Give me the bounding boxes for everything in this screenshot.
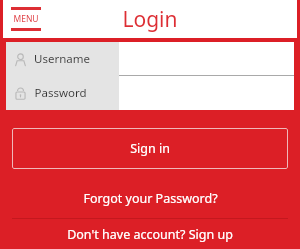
staticText: Don't have account? Sign up bbox=[67, 226, 233, 243]
staticText: Username bbox=[34, 51, 90, 67]
staticText: Sign in bbox=[130, 140, 170, 157]
button[interactable]: Password bbox=[6, 76, 119, 110]
button[interactable]: Don't have account? Sign up bbox=[0, 222, 300, 246]
button[interactable]: Sign in bbox=[12, 128, 288, 169]
button[interactable]: Username bbox=[6, 42, 119, 76]
button[interactable]: Forgot your Password? bbox=[0, 185, 300, 211]
staticText: Login bbox=[122, 5, 178, 34]
staticText: Forgot your Password? bbox=[83, 190, 218, 207]
staticText: MENU bbox=[13, 13, 39, 25]
button[interactable]: MENU bbox=[10, 5, 42, 33]
staticText: Password bbox=[34, 85, 87, 101]
